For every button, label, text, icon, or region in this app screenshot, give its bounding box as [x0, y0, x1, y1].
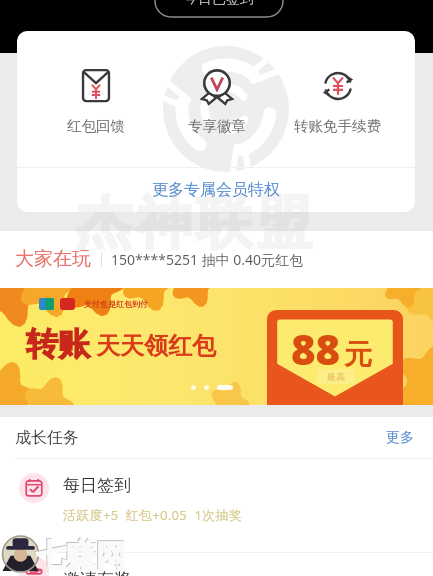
staticText: 专享徽章	[188, 117, 246, 135]
staticText: 每日签到	[63, 475, 131, 496]
staticText: 大家在玩	[15, 247, 91, 271]
button[interactable]: 转账免手续费	[277, 31, 398, 135]
button[interactable]: 邀请有奖	[0, 553, 433, 576]
button[interactable]: 今日已签到	[155, 0, 283, 17]
staticText: 更多	[386, 429, 414, 447]
button[interactable]: 更多	[382, 425, 418, 451]
button[interactable]: 每日签到	[0, 459, 433, 552]
staticText: 邀请有奖	[63, 569, 131, 576]
staticText: 天天领红包	[96, 331, 216, 361]
staticText: 杰神联盟	[74, 188, 314, 259]
other: 红包回馈	[78, 68, 114, 104]
staticText: 七赚网	[36, 537, 126, 575]
staticText: 更多专属会员特权	[152, 180, 280, 200]
button[interactable]: 支付也是红包到付	[0, 288, 433, 405]
button[interactable]: 红包回馈	[35, 31, 156, 135]
staticText: 今日已签到	[184, 0, 254, 8]
staticText: 支付也是红包到付	[84, 299, 148, 309]
staticText: 转账免手续费	[294, 117, 381, 135]
staticText: 七赚网	[35, 536, 125, 574]
staticText: 最高	[327, 371, 345, 382]
staticText: 转账	[26, 324, 90, 364]
staticText: 150****5251 抽中 0.40元红包	[111, 250, 303, 269]
staticText: 红包回馈	[67, 117, 125, 135]
staticText: 88	[291, 320, 341, 377]
button[interactable]: 更多专属会员特权	[17, 168, 415, 212]
button[interactable]: 专享徽章	[156, 31, 277, 135]
other: 转账免手续费	[320, 68, 356, 104]
staticText: 活跃度+5 红包+0.05 1次抽奖	[63, 506, 243, 524]
staticText: 成长任务	[15, 428, 79, 448]
other: 专享徽章	[199, 68, 235, 104]
staticText: 元	[344, 337, 372, 372]
